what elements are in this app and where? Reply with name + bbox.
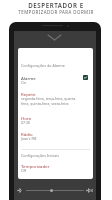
staticText: Rádio bbox=[21, 131, 33, 137]
staticText: TEMPORIZADOR PARA DORMIR bbox=[18, 9, 94, 15]
staticText: Hora bbox=[21, 115, 32, 121]
staticText: On bbox=[21, 80, 26, 85]
button[interactable]: Hora bbox=[18, 114, 93, 126]
staticText: Configurações do Alarme bbox=[21, 63, 65, 68]
staticText: Joao's FM bbox=[21, 136, 37, 141]
staticText: segunda-feira, terça-feira, quarta-feira… bbox=[21, 96, 80, 106]
staticText: Repetir bbox=[21, 91, 36, 97]
button[interactable]: Alarme bbox=[18, 74, 93, 86]
staticText: Temporizador bbox=[21, 163, 50, 169]
staticText: Alarme bbox=[21, 75, 36, 81]
button[interactable]: Repetir bbox=[18, 90, 93, 105]
staticText: Off bbox=[21, 168, 27, 173]
staticText: DESPERTADOR E bbox=[28, 1, 84, 9]
button[interactable]: Rádio bbox=[18, 130, 93, 142]
button[interactable]: Silenciar bbox=[86, 187, 93, 194]
button[interactable]: Recolher bbox=[48, 35, 61, 40]
button[interactable]: Volume bbox=[17, 187, 24, 194]
staticText: Configurações Iniciais bbox=[21, 153, 59, 158]
staticText: 07:30 bbox=[21, 120, 30, 125]
button[interactable]: Temporizador bbox=[18, 162, 93, 174]
